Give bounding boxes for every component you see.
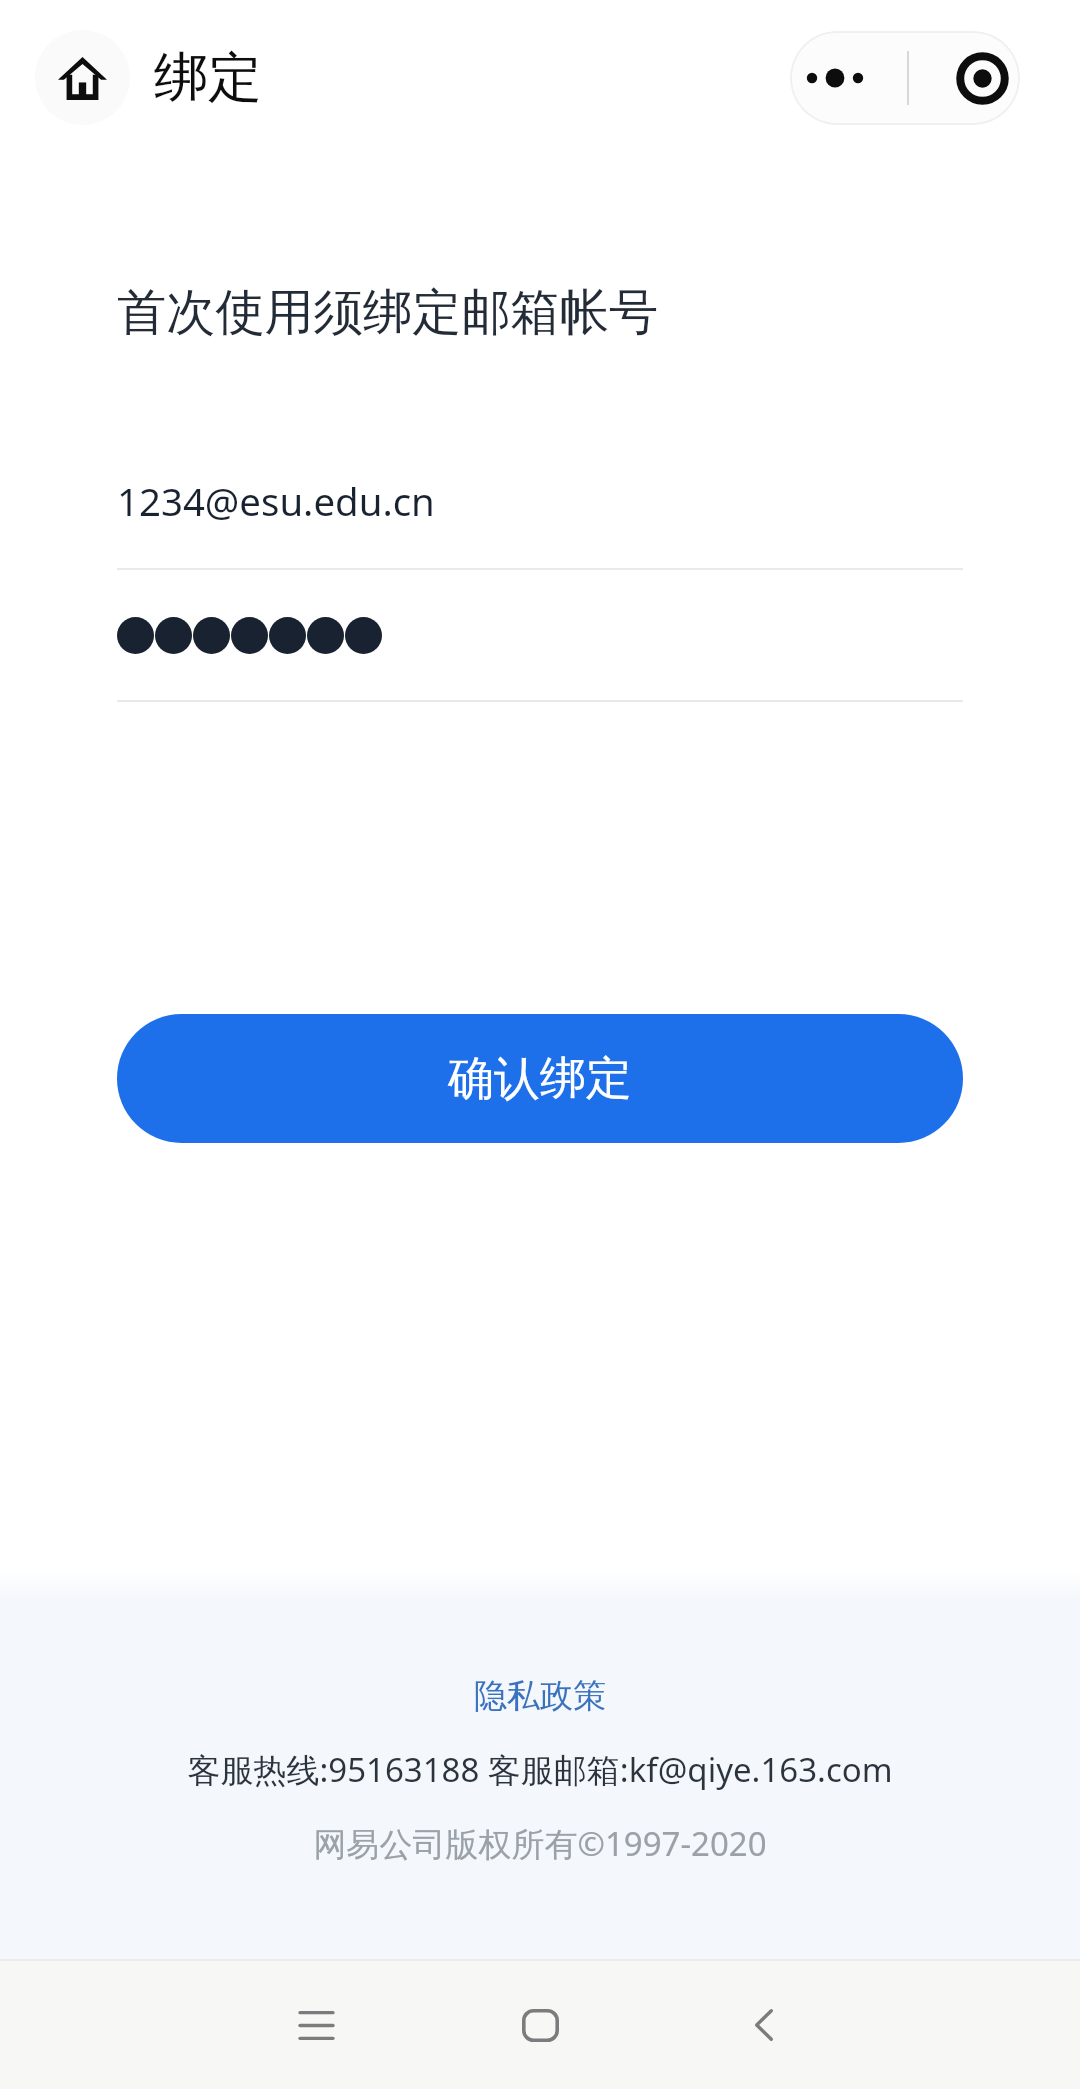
button[interactable]: 隐私政策: [456, 1672, 624, 1720]
button[interactable]: Back: [652, 1961, 876, 2089]
button[interactable]: Home: [428, 1961, 652, 2089]
staticText: 确认绑定: [448, 1050, 632, 1108]
button[interactable]: [117, 617, 963, 702]
button[interactable]: Close mini program: [909, 31, 1020, 125]
staticText: 绑定: [154, 44, 262, 112]
button[interactable]: Home: [35, 30, 130, 125]
staticText: 网易公司版权所有©1997-2020: [313, 1821, 767, 1866]
button[interactable]: Recent apps: [204, 1961, 428, 2089]
staticText: 1234@esu.edu.cn: [117, 475, 435, 527]
button[interactable]: More options: [790, 31, 907, 125]
button[interactable]: 确认绑定: [117, 1014, 963, 1143]
button[interactable]: 1234@esu.edu.cn: [117, 479, 963, 570]
staticText: 隐私政策: [474, 1675, 606, 1717]
staticText: 首次使用须绑定邮箱帐号: [117, 282, 659, 344]
staticText: 客服热线:95163188 客服邮箱:kf@qiye.163.com: [187, 1747, 893, 1792]
